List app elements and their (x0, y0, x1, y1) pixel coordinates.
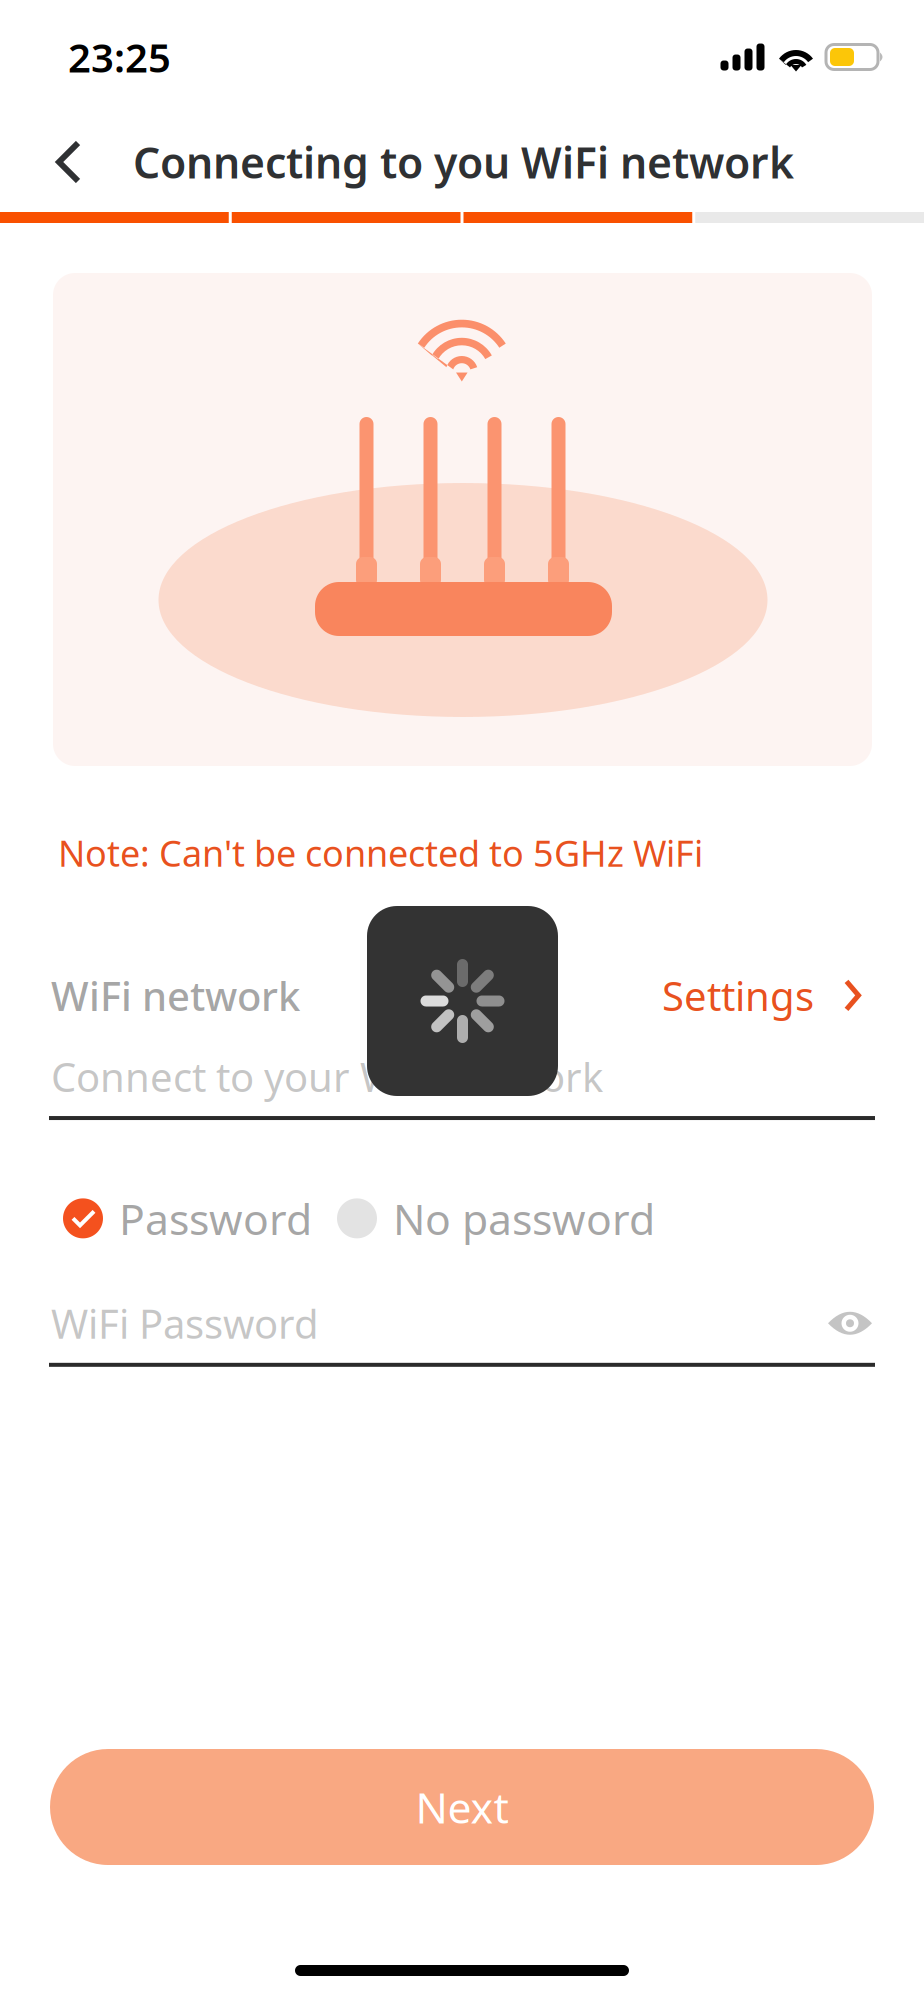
staticText: 23:25 (68, 30, 171, 83)
staticText: Connect to your WiFi network (51, 1050, 603, 1103)
button[interactable]: Show password (827, 1306, 873, 1340)
staticText: No password (393, 1190, 655, 1247)
staticText: Password (119, 1190, 312, 1247)
button[interactable]: Back (0, 116, 133, 208)
staticText: Note: Can't be connected to 5GHz WiFi (58, 829, 703, 877)
staticText: Connecting to you WiFi network (133, 134, 794, 190)
button[interactable]: Settings (662, 969, 861, 1022)
button[interactable]: Password (63, 1190, 312, 1247)
button[interactable]: No password (337, 1190, 655, 1247)
staticText: WiFi Password (51, 1297, 319, 1350)
staticText: Next (415, 1779, 508, 1835)
button[interactable]: Next (50, 1749, 874, 1865)
staticText: Settings (662, 969, 814, 1022)
staticText: WiFi network (51, 969, 300, 1022)
